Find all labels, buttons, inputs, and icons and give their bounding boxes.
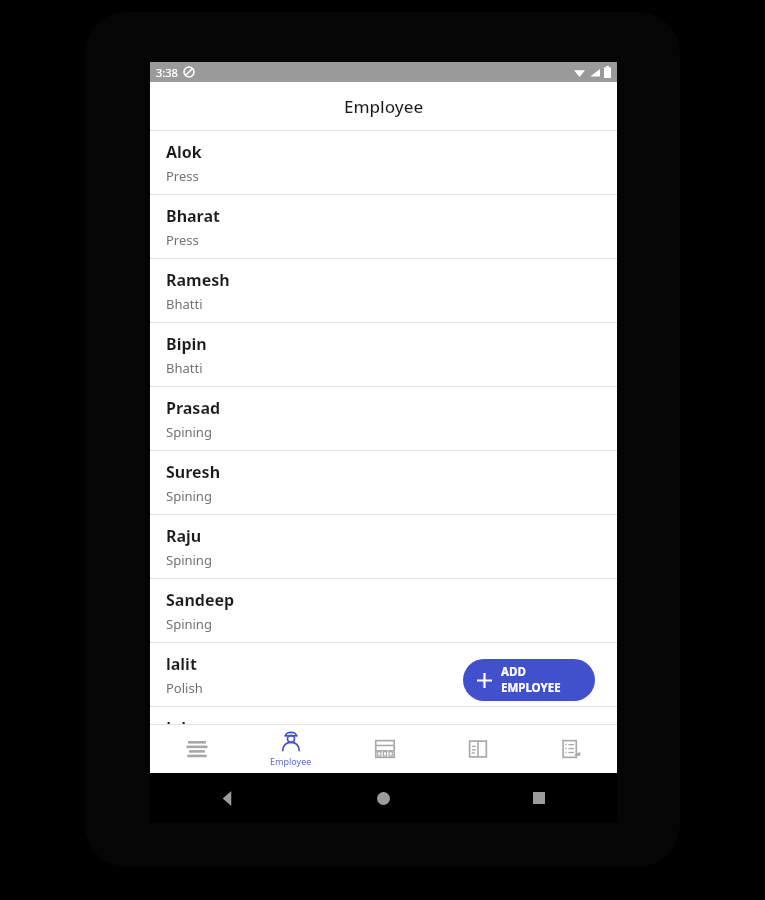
staticText: Press bbox=[166, 167, 199, 185]
button[interactable]: ADD EMPLOYEE bbox=[463, 659, 595, 701]
staticText: Spining bbox=[166, 551, 212, 569]
staticText: Employee bbox=[270, 755, 312, 767]
staticText: Bipin bbox=[166, 333, 207, 355]
button[interactable]: Recents bbox=[461, 773, 617, 823]
staticText: ADD EMPLOYEE bbox=[501, 664, 581, 696]
staticText: Suresh bbox=[166, 461, 221, 483]
staticText: Polish bbox=[166, 743, 203, 761]
staticText: Bhatti bbox=[166, 359, 203, 377]
button[interactable]: Machines bbox=[338, 725, 431, 773]
button[interactable]: Back bbox=[150, 773, 305, 823]
staticText: Spining bbox=[166, 615, 212, 633]
button[interactable]: List bbox=[150, 725, 244, 773]
button[interactable]: Home bbox=[305, 773, 461, 823]
staticText: Press bbox=[166, 231, 199, 249]
staticText: Spining bbox=[166, 423, 212, 441]
staticText: Bharat bbox=[166, 205, 220, 227]
button[interactable]: Suresh bbox=[150, 451, 617, 514]
button[interactable]: Alok bbox=[150, 131, 617, 194]
staticText: 3:38 bbox=[156, 65, 178, 80]
button[interactable]: Prasad bbox=[150, 387, 617, 450]
staticText: Bhatti bbox=[166, 295, 203, 313]
button[interactable]: lalit bbox=[150, 643, 617, 706]
button[interactable]: Cards bbox=[431, 725, 524, 773]
staticText: Raju bbox=[166, 525, 202, 547]
button[interactable]: Ramesh bbox=[150, 259, 617, 322]
button[interactable]: Bharat bbox=[150, 195, 617, 258]
button[interactable]: John bbox=[150, 707, 617, 770]
button[interactable]: Sandeep bbox=[150, 579, 617, 642]
button[interactable]: Reports bbox=[524, 725, 617, 773]
staticText: Spining bbox=[166, 487, 212, 505]
staticText: Ramesh bbox=[166, 269, 230, 291]
button[interactable]: Employee bbox=[244, 725, 338, 773]
staticText: lalit bbox=[166, 653, 197, 675]
staticText: Sandeep bbox=[166, 589, 235, 611]
staticText: Prasad bbox=[166, 397, 221, 419]
staticText: Alok bbox=[166, 141, 202, 163]
button[interactable]: Raju bbox=[150, 515, 617, 578]
staticText: Polish bbox=[166, 679, 203, 697]
staticText: Employee bbox=[344, 95, 424, 118]
button[interactable]: Bipin bbox=[150, 323, 617, 386]
staticText: John bbox=[166, 717, 203, 739]
